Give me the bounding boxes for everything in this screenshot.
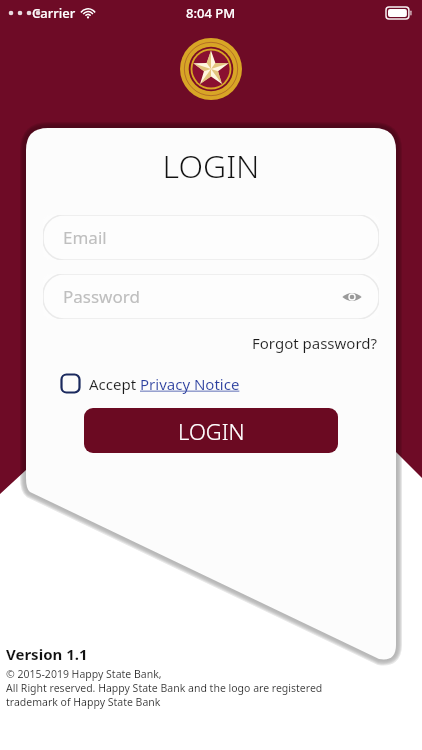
staticText: Password	[63, 285, 140, 308]
button[interactable]: Privacy Notice	[140, 374, 240, 394]
staticText: Forgot password?	[252, 333, 378, 353]
staticText: LOGIN	[26, 144, 396, 188]
staticText: 8:04 PM	[186, 4, 236, 22]
button[interactable]: LOGIN	[84, 408, 338, 453]
staticText: Privacy Notice	[140, 374, 240, 394]
button[interactable]: Show password	[339, 284, 365, 310]
staticText: © 2015-2019 Happy State Bank, All Right …	[6, 667, 323, 709]
button[interactable]: Accept Privacy Notice checkbox	[60, 373, 81, 394]
button[interactable]: Email	[43, 215, 379, 260]
staticText: Accept	[89, 374, 140, 394]
staticText: Email	[63, 226, 107, 249]
staticText: Version 1.1	[6, 644, 88, 664]
button[interactable]: Password	[43, 274, 379, 319]
staticText: Carrier	[32, 4, 76, 22]
button[interactable]: Forgot password?	[26, 333, 378, 353]
staticText: LOGIN	[178, 416, 245, 446]
